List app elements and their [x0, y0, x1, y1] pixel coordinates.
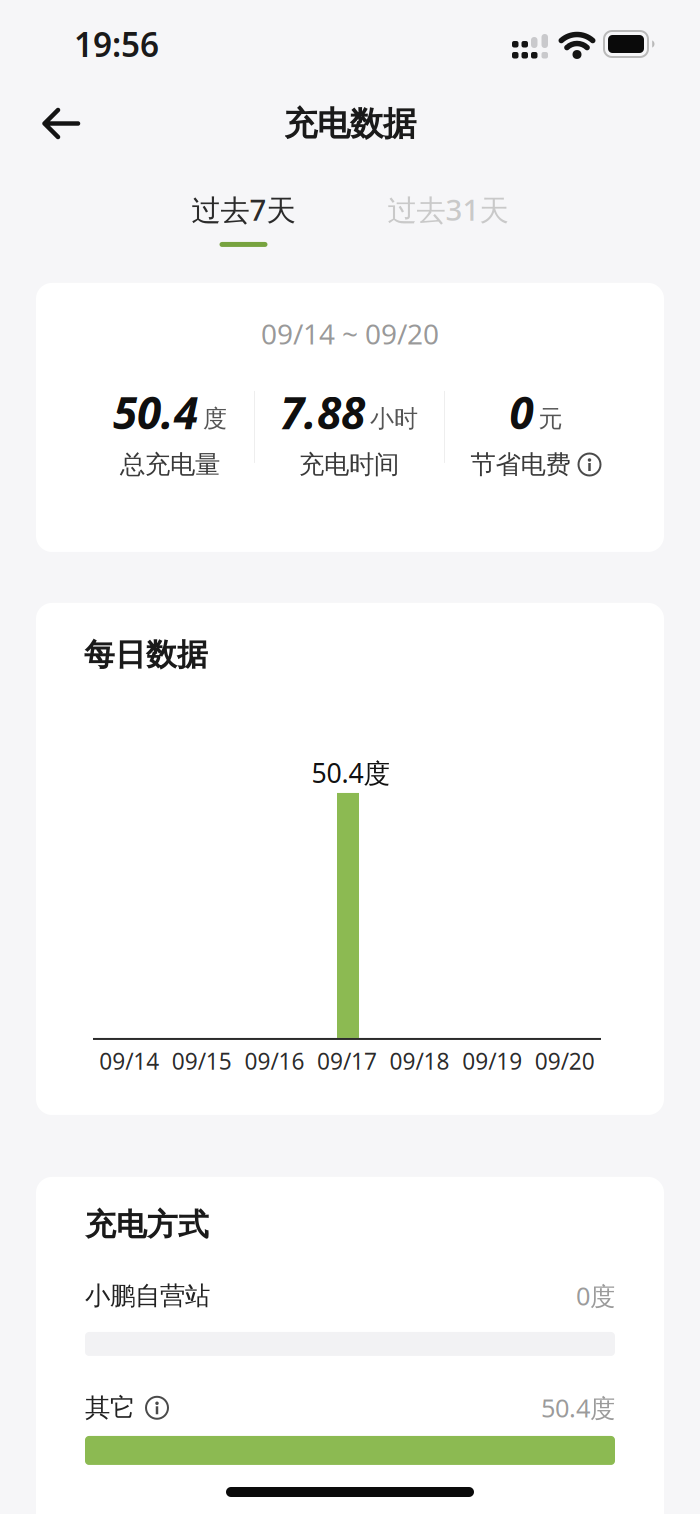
staticText: 小鹏自营站: [85, 1280, 210, 1311]
button[interactable]: 节省电费: [470, 449, 601, 480]
staticText: 50.4: [113, 383, 198, 441]
button[interactable]: 过去7天: [191, 190, 295, 247]
staticText: 09/19: [462, 1046, 522, 1076]
button[interactable]: 过去31天: [387, 190, 508, 229]
staticText: 0度: [576, 1279, 615, 1313]
staticText: 09/15: [172, 1046, 232, 1076]
staticText: 元: [538, 404, 562, 433]
button[interactable]: [0, 100, 80, 148]
staticText: 小时: [370, 404, 418, 433]
staticText: 50.4度: [311, 755, 390, 790]
staticText: 7.88: [280, 383, 365, 441]
staticText: 50.4度: [541, 1391, 615, 1425]
staticText: 度: [203, 404, 227, 433]
staticText: 09/16: [244, 1046, 304, 1076]
staticText: 其它: [85, 1392, 135, 1423]
staticText: 19:56: [74, 22, 159, 66]
staticText: 充电时间: [299, 449, 399, 480]
staticText: 09/17: [317, 1046, 377, 1076]
staticText: 09/14: [99, 1046, 159, 1076]
staticText: 每日数据: [84, 636, 208, 674]
staticText: 09/20: [535, 1046, 595, 1076]
staticText: 09/18: [390, 1046, 450, 1076]
staticText: 充电数据: [284, 103, 416, 144]
staticText: 充电方式: [85, 1206, 209, 1244]
staticText: 0: [509, 383, 533, 441]
button[interactable]: [135, 1396, 169, 1420]
staticText: 总充电量: [120, 449, 220, 480]
staticText: 过去7天: [191, 190, 295, 229]
staticText: 过去31天: [387, 190, 508, 229]
staticText: 09/14 ~ 09/20: [261, 315, 439, 352]
staticText: 节省电费: [470, 449, 570, 480]
